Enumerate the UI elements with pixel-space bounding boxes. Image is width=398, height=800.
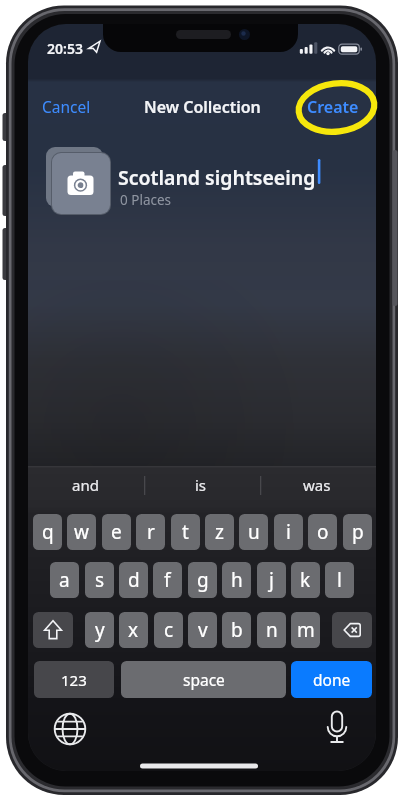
button[interactable]: p	[343, 514, 372, 550]
staticText: is	[195, 475, 207, 495]
button[interactable]: space	[121, 661, 286, 698]
staticText: c	[164, 617, 174, 643]
staticText: m	[297, 617, 315, 643]
button[interactable]: j	[257, 562, 286, 598]
button[interactable]: o	[308, 514, 337, 550]
staticText: v	[198, 617, 208, 643]
staticText: j	[269, 567, 274, 593]
staticText: z	[215, 519, 224, 545]
button[interactable]: was	[262, 471, 372, 499]
button[interactable]: a	[50, 562, 79, 598]
button[interactable]	[332, 612, 372, 648]
staticText: 0 Places	[120, 191, 172, 209]
button[interactable]: Create	[300, 96, 366, 118]
staticText: b	[231, 617, 243, 643]
staticText: Scotland sightseeing	[118, 164, 316, 191]
button[interactable]: i	[274, 514, 303, 550]
staticText: Cancel	[42, 96, 91, 117]
staticText: u	[248, 519, 260, 545]
staticText: k	[300, 567, 311, 593]
button[interactable]: s	[85, 562, 114, 598]
button[interactable]: v	[188, 612, 217, 648]
staticText: n	[266, 617, 278, 643]
button[interactable]: z	[205, 514, 234, 550]
button[interactable]: c	[154, 612, 183, 648]
staticText: g	[197, 567, 209, 593]
staticText: a	[59, 567, 70, 593]
staticText: s	[95, 567, 105, 593]
staticText: and	[72, 475, 99, 495]
staticText: space	[183, 669, 225, 690]
button[interactable]: is	[146, 471, 256, 499]
staticText: w	[74, 519, 89, 545]
staticText: r	[147, 519, 155, 545]
button[interactable]: q	[33, 514, 62, 550]
staticText: y	[95, 617, 105, 643]
button[interactable]: l	[325, 562, 354, 598]
staticText: h	[231, 567, 243, 593]
button[interactable]: w	[67, 514, 96, 550]
staticText: was	[303, 475, 331, 495]
staticText: p	[352, 519, 364, 545]
staticText: q	[42, 519, 54, 545]
staticText: l	[337, 567, 342, 593]
staticText: t	[182, 519, 189, 545]
button[interactable]: r	[136, 514, 165, 550]
button[interactable]: done	[291, 661, 372, 698]
button[interactable]: b	[222, 612, 251, 648]
button[interactable]: x	[119, 612, 148, 648]
staticText: e	[111, 519, 122, 545]
button[interactable]: 123	[34, 661, 114, 698]
button[interactable]	[46, 147, 346, 217]
staticText: f	[164, 567, 171, 593]
button[interactable]: t	[171, 514, 200, 550]
button[interactable]: and	[30, 471, 140, 499]
button[interactable]: y	[85, 612, 114, 648]
button[interactable]: u	[239, 514, 268, 550]
button[interactable]: f	[153, 562, 182, 598]
staticText: i	[286, 519, 291, 545]
button[interactable]: g	[188, 562, 217, 598]
button[interactable]: n	[257, 612, 286, 648]
button[interactable]: k	[291, 562, 320, 598]
staticText: x	[128, 617, 139, 643]
button[interactable]	[33, 612, 73, 648]
staticText: done	[313, 669, 351, 690]
button[interactable]: e	[102, 514, 131, 550]
button[interactable]: d	[119, 562, 148, 598]
button[interactable]: h	[222, 562, 251, 598]
staticText: 20:53	[47, 39, 83, 58]
button[interactable]	[52, 711, 88, 747]
button[interactable]: m	[291, 612, 320, 648]
staticText: d	[128, 567, 140, 593]
button[interactable]	[319, 709, 355, 745]
button[interactable]: Cancel	[42, 96, 98, 118]
staticText: 123	[61, 670, 87, 690]
staticText: New Collection	[144, 96, 261, 118]
staticText: o	[317, 519, 329, 545]
staticText: Create	[307, 96, 359, 118]
